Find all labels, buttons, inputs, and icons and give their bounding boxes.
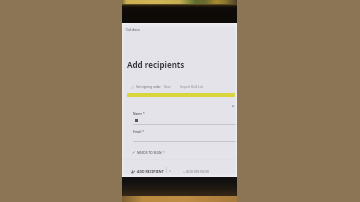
button[interactable]: NEEDS TO SIGN <box>132 150 165 154</box>
staticText: NEEDS TO SIGN <box>137 150 162 154</box>
button[interactable]: ADD RECIPIENT <box>131 169 164 174</box>
button[interactable]: More options <box>232 105 235 108</box>
button[interactable]: Import Bulk List <box>180 85 204 89</box>
button[interactable]: + ADD ME NOW <box>183 169 210 174</box>
button[interactable]: Recipient options <box>169 170 171 172</box>
staticText: Email * <box>133 130 144 134</box>
button[interactable]: Set signing order <box>131 85 161 89</box>
staticText: ADD RECIPIENT <box>137 169 164 174</box>
staticText: Set signing order <box>136 85 161 89</box>
button[interactable]: New <box>164 85 171 89</box>
staticText: Col.docx <box>126 27 140 32</box>
staticText: Name * <box>133 112 145 116</box>
staticText: Add recipients <box>127 59 185 70</box>
